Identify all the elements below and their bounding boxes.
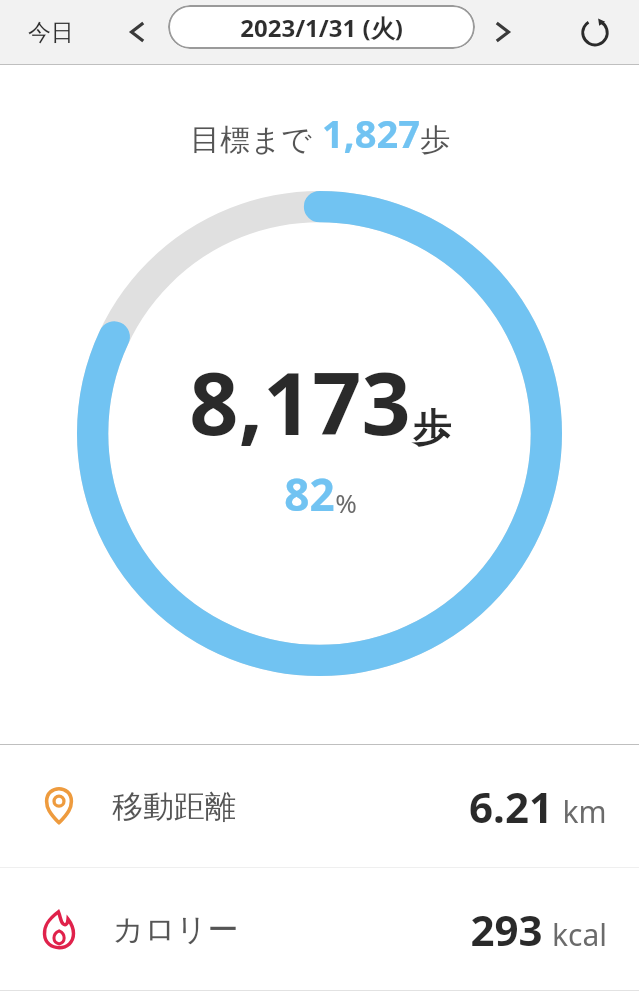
button[interactable]: Next day (478, 6, 530, 58)
staticText: 1,827 (322, 107, 420, 159)
button[interactable]: 2023/1/31 (火) (168, 5, 475, 49)
button[interactable]: Refresh (569, 6, 621, 58)
staticText: km (562, 791, 607, 832)
other: Calories (36, 906, 82, 952)
other: Distance (36, 783, 82, 829)
staticText: kcal (552, 914, 607, 955)
staticText: 歩 (413, 404, 451, 452)
staticText: 歩 (420, 121, 450, 159)
button[interactable]: Previous day (110, 6, 162, 58)
staticText: 82 (284, 464, 335, 524)
staticText: % (335, 485, 357, 520)
button[interactable]: Calories (0, 868, 639, 990)
staticText: 移動距離 (112, 787, 236, 826)
staticText: 6.21 (469, 778, 553, 835)
button[interactable]: Distance (0, 745, 639, 867)
staticText: 2023/1/31 (火) (240, 11, 403, 44)
staticText: カロリー (112, 910, 239, 949)
staticText: 目標まで (190, 121, 312, 159)
staticText: 今日 (28, 18, 74, 47)
button[interactable]: 今日 (18, 12, 84, 53)
staticText: 293 (470, 901, 543, 958)
staticText: 8,173 (189, 343, 411, 460)
